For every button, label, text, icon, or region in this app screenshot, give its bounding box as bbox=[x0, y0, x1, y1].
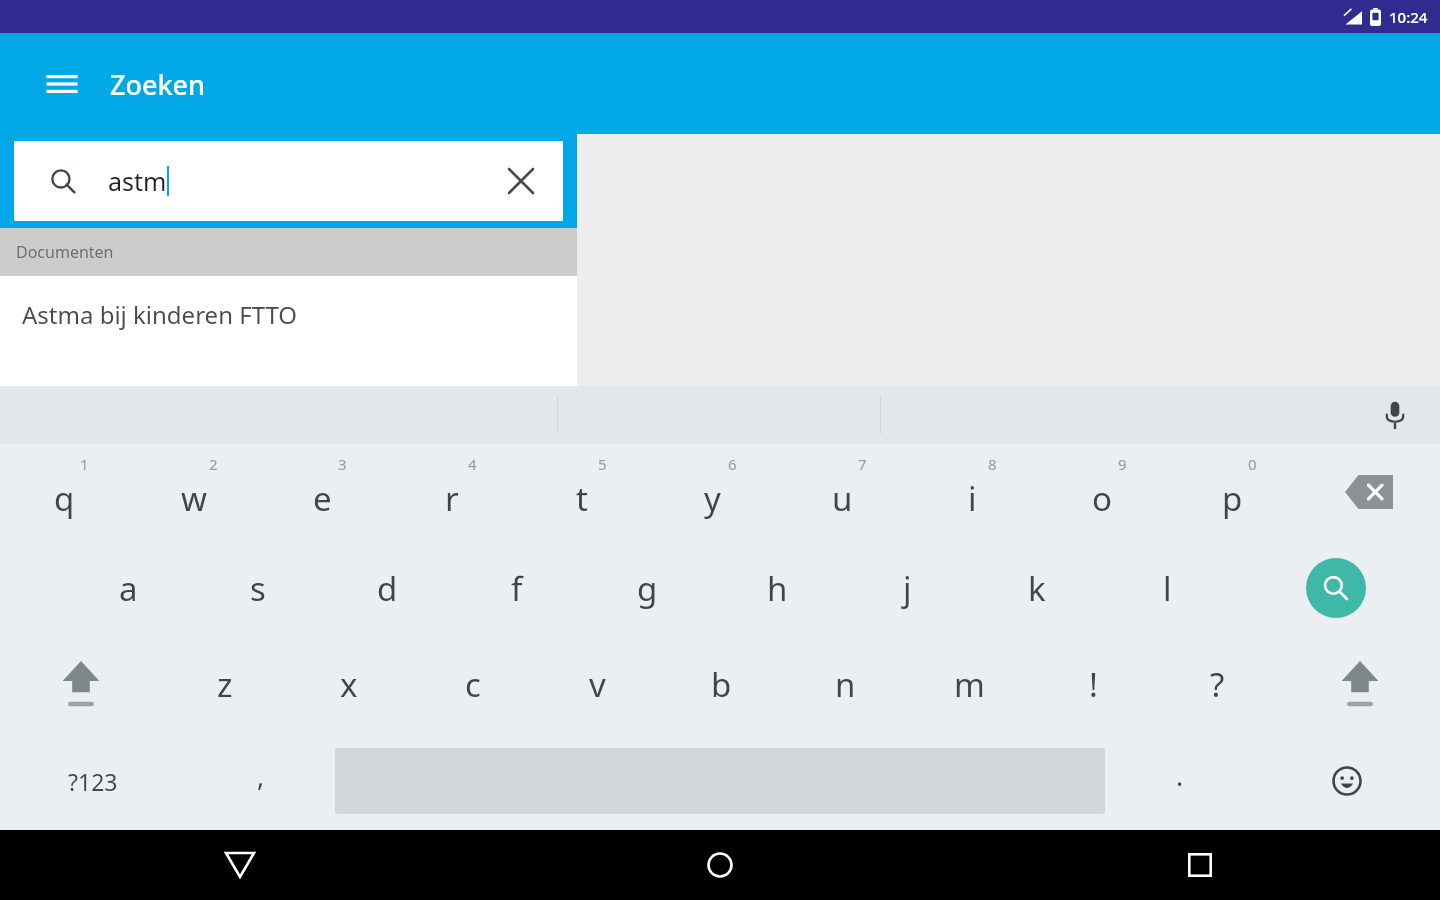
staticText: ! bbox=[1089, 662, 1098, 707]
staticText: 7 bbox=[858, 454, 867, 474]
button[interactable]: Shift bbox=[0, 636, 162, 732]
button[interactable]: Shift bbox=[1279, 636, 1440, 732]
staticText: s bbox=[250, 566, 266, 611]
staticText: o bbox=[1092, 476, 1112, 521]
button[interactable]: k bbox=[972, 540, 1102, 636]
staticText: 10:24 bbox=[1389, 7, 1428, 27]
staticText: z bbox=[217, 662, 233, 707]
staticText: , bbox=[257, 757, 265, 794]
button[interactable]: g bbox=[582, 540, 712, 636]
button[interactable]: ! bbox=[1031, 636, 1155, 732]
button[interactable]: 8 bbox=[907, 444, 1037, 540]
staticText: a bbox=[119, 566, 138, 611]
staticText: n bbox=[835, 662, 856, 707]
staticText: g bbox=[637, 566, 658, 611]
staticText: Documenten bbox=[16, 241, 114, 263]
button[interactable]: z bbox=[162, 636, 287, 732]
button[interactable]: Home bbox=[480, 830, 960, 900]
button[interactable]: Voice input bbox=[1372, 392, 1418, 438]
staticText: . bbox=[1176, 757, 1184, 794]
button[interactable]: s bbox=[193, 540, 322, 636]
button[interactable]: f bbox=[452, 540, 582, 636]
button[interactable]: Back bbox=[0, 830, 480, 900]
staticText: ? bbox=[1210, 662, 1225, 707]
button[interactable]: ?123 bbox=[0, 732, 186, 830]
button[interactable]: 3 bbox=[258, 444, 387, 540]
staticText: c bbox=[465, 662, 481, 707]
button[interactable]: h bbox=[712, 540, 842, 636]
staticText: 5 bbox=[598, 454, 607, 474]
staticText: x bbox=[340, 662, 358, 707]
staticText: ?123 bbox=[68, 766, 118, 797]
staticText: 1 bbox=[80, 454, 89, 474]
staticText: h bbox=[767, 566, 788, 611]
button[interactable]: a bbox=[64, 540, 193, 636]
button[interactable]: astm bbox=[14, 141, 563, 221]
staticText: 4 bbox=[468, 454, 477, 474]
button[interactable]: 7 bbox=[777, 444, 907, 540]
button[interactable]: b bbox=[659, 636, 783, 732]
staticText: d bbox=[377, 566, 398, 611]
button[interactable]: l bbox=[1102, 540, 1232, 636]
staticText: e bbox=[313, 476, 332, 521]
staticText: 8 bbox=[988, 454, 997, 474]
staticText: m bbox=[954, 662, 985, 707]
button[interactable]: Emoji bbox=[1254, 732, 1440, 830]
button[interactable]: n bbox=[783, 636, 907, 732]
button[interactable]: 1 bbox=[0, 444, 129, 540]
staticText: u bbox=[832, 476, 853, 521]
staticText: k bbox=[1028, 566, 1046, 611]
button[interactable]: , bbox=[186, 732, 335, 830]
staticText: astm bbox=[108, 164, 167, 198]
staticText: f bbox=[511, 566, 523, 611]
button[interactable]: ? bbox=[1155, 636, 1279, 732]
button[interactable]: Clear search bbox=[493, 153, 549, 209]
button[interactable]: j bbox=[842, 540, 972, 636]
staticText: 9 bbox=[1118, 454, 1127, 474]
button[interactable]: 2 bbox=[129, 444, 258, 540]
button[interactable]: 6 bbox=[647, 444, 777, 540]
staticText: 0 bbox=[1248, 454, 1257, 474]
staticText: b bbox=[711, 662, 732, 707]
staticText: 6 bbox=[728, 454, 737, 474]
staticText: 3 bbox=[338, 454, 347, 474]
button[interactable]: 9 bbox=[1037, 444, 1167, 540]
button[interactable]: Backspace bbox=[1297, 444, 1440, 540]
staticText: r bbox=[445, 476, 459, 521]
button[interactable]: m bbox=[907, 636, 1031, 732]
button[interactable]: Astma bij kinderen FTTO bbox=[0, 276, 577, 386]
button[interactable]: Search bbox=[1232, 540, 1440, 636]
staticText: q bbox=[54, 476, 75, 521]
staticText: y bbox=[704, 476, 721, 521]
button[interactable]: . bbox=[1105, 732, 1254, 830]
button[interactable]: x bbox=[287, 636, 411, 732]
staticText: w bbox=[181, 476, 207, 521]
staticText: l bbox=[1163, 566, 1172, 611]
staticText: i bbox=[968, 476, 977, 521]
button[interactable]: 5 bbox=[517, 444, 647, 540]
staticText: p bbox=[1222, 476, 1243, 521]
button[interactable]: Open navigation menu bbox=[40, 62, 84, 106]
button[interactable]: 4 bbox=[387, 444, 517, 540]
button[interactable]: v bbox=[535, 636, 659, 732]
staticText: Zoeken bbox=[110, 66, 206, 103]
button[interactable]: d bbox=[322, 540, 452, 636]
button[interactable]: c bbox=[411, 636, 535, 732]
staticText: v bbox=[589, 662, 606, 707]
button[interactable]: Recent apps bbox=[960, 830, 1440, 900]
staticText: t bbox=[576, 476, 588, 521]
staticText: 2 bbox=[209, 454, 218, 474]
button[interactable]: 0 bbox=[1167, 444, 1297, 540]
staticText: Astma bij kinderen FTTO bbox=[22, 298, 298, 331]
staticText: j bbox=[903, 566, 912, 611]
